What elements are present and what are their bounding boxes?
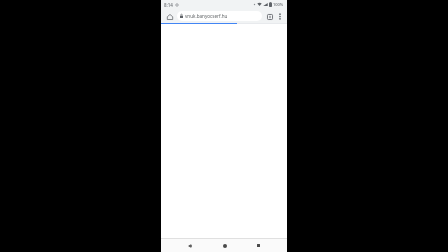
button[interactable]: More options bbox=[275, 12, 284, 21]
button[interactable]: Home bbox=[164, 11, 175, 22]
button[interactable]: vnuk.banyocserf.hu bbox=[177, 11, 262, 21]
staticText: 8:14 bbox=[164, 2, 173, 8]
staticText: vnuk.banyocserf.hu bbox=[185, 13, 228, 19]
button[interactable]: Home bbox=[218, 239, 231, 252]
button[interactable]: Recent apps bbox=[252, 239, 265, 252]
button[interactable]: Switch tabs bbox=[264, 11, 275, 22]
staticText: 100% bbox=[273, 2, 284, 7]
button[interactable]: Back bbox=[183, 239, 196, 252]
